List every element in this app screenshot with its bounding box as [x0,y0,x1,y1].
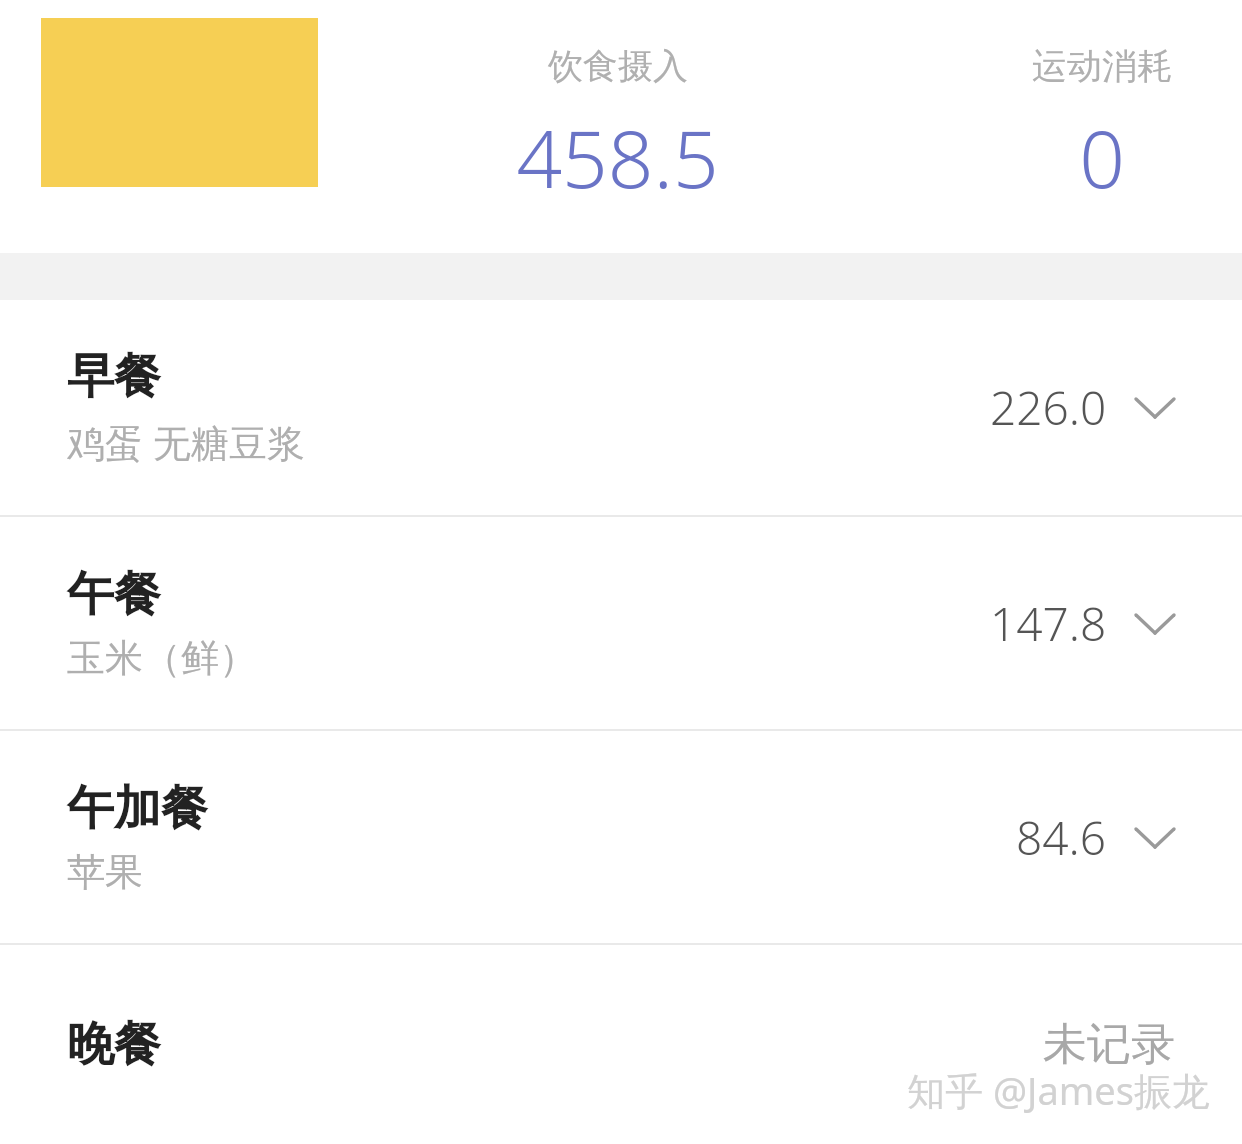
staticText: 午餐 [67,565,161,624]
staticText: 知乎 @James振龙 [907,1064,1210,1116]
staticText: 226.0 [990,376,1107,439]
button[interactable]: 晚餐 [0,945,1242,1144]
staticText: 玉米（鲜） [67,634,257,682]
staticText: 晚餐 [67,1015,161,1074]
other: Expand [1135,612,1175,636]
staticText: 147.8 [990,592,1107,655]
button[interactable]: 午加餐 [0,731,1242,943]
staticText: 鸡蛋 无糖豆浆 [67,416,305,468]
staticText: 苹果 [67,848,143,896]
button[interactable]: 午餐 [0,517,1242,729]
staticText: 午加餐 [67,779,208,838]
staticText: 饮食摄入 [548,44,688,88]
staticText: 84.6 [1016,806,1107,869]
staticText: 未记录 [1043,1017,1175,1072]
staticText: 458.5 [516,102,719,211]
staticText: 早餐 [67,347,161,406]
button[interactable]: 运动消耗 [902,44,1242,211]
other: Expand [1135,826,1175,850]
staticText: 运动消耗 [1032,44,1172,88]
staticText: 0 [1079,102,1125,211]
button[interactable]: 饮食摄入 [417,44,817,211]
other: Expand [1135,396,1175,420]
button[interactable]: 早餐 [0,300,1242,515]
